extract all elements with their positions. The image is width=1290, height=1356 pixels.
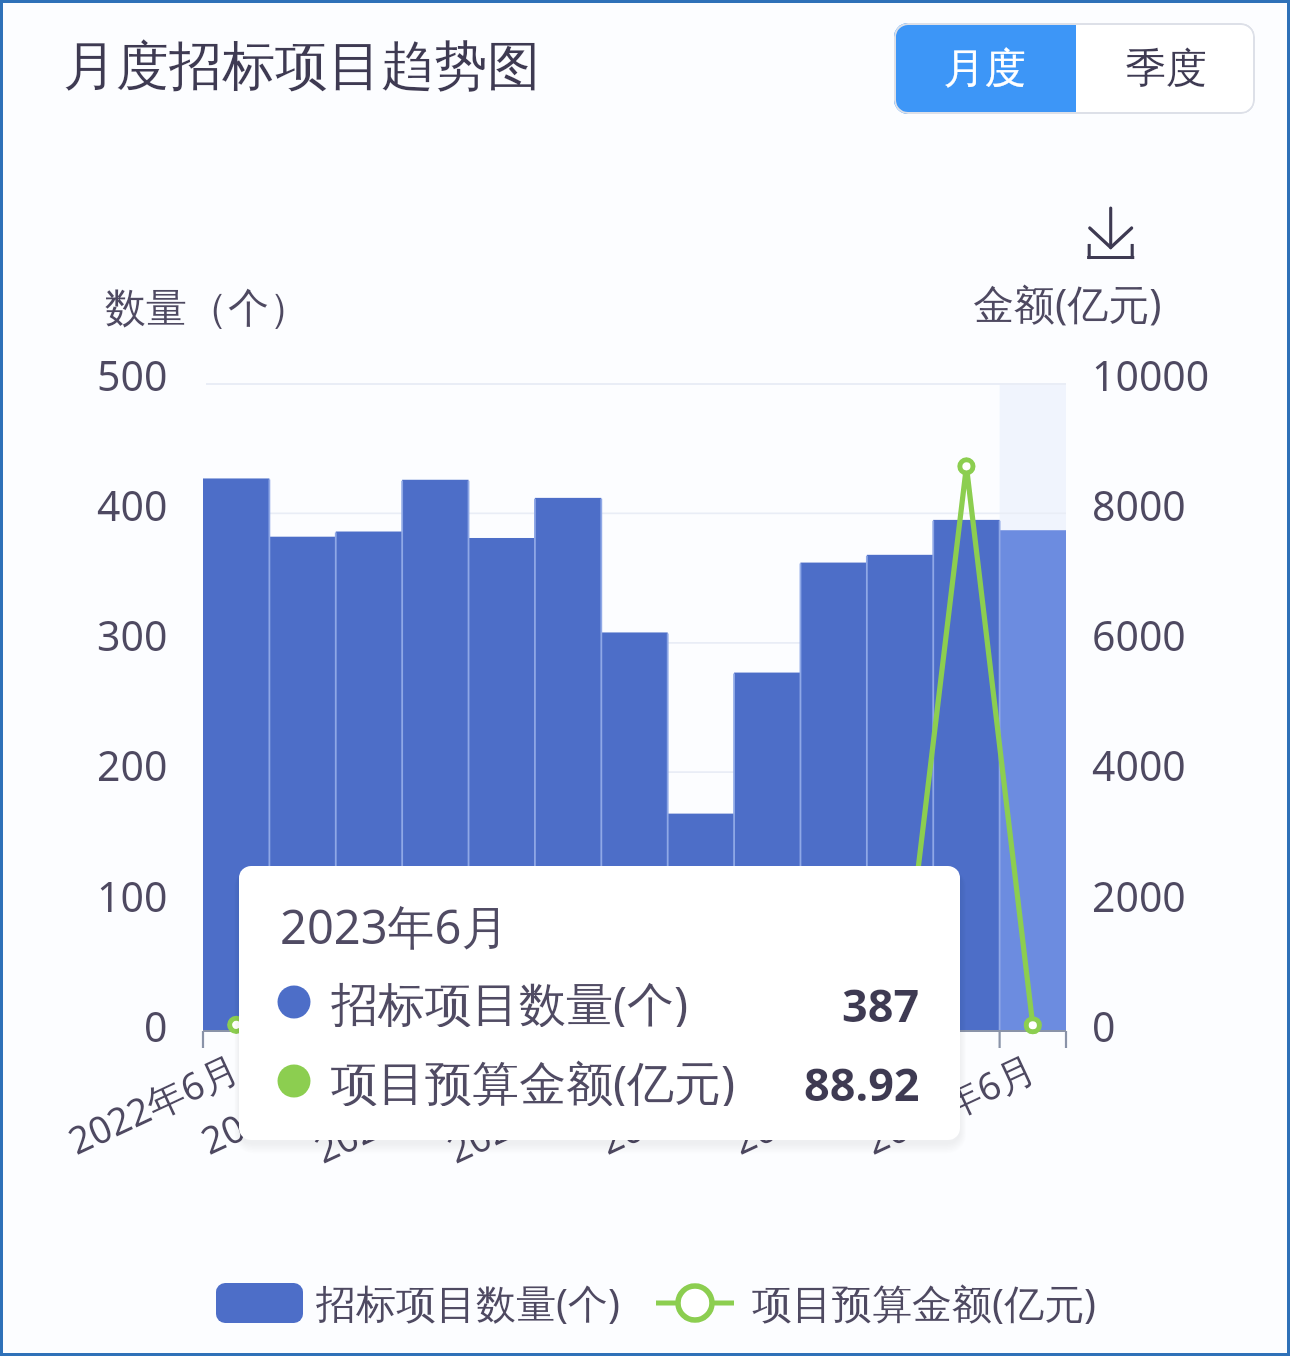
staticText: 项目预算金额(亿元) xyxy=(331,1050,736,1106)
staticText: 387 xyxy=(842,974,920,1030)
staticText: 100 xyxy=(97,868,168,924)
staticText: 2000 xyxy=(1092,868,1186,924)
staticText: 0 xyxy=(1092,998,1116,1054)
button[interactable]: 月度 xyxy=(894,23,1076,114)
button[interactable]: 季度 xyxy=(1076,23,1255,114)
staticText: 500 xyxy=(97,347,168,403)
staticText: 招标项目数量(个) xyxy=(331,971,689,1027)
button[interactable]: 招标项目数量(个) xyxy=(216,1275,620,1330)
staticText: 4000 xyxy=(1092,737,1186,793)
staticText: 300 xyxy=(97,607,168,663)
staticText: 月度 xyxy=(944,43,1026,95)
staticText: 400 xyxy=(97,477,168,533)
button[interactable]: 项目预算金额(亿元) xyxy=(656,1275,1096,1330)
staticText: 200 xyxy=(97,737,168,793)
staticText: 招标项目数量(个) xyxy=(316,1275,620,1330)
staticText: 6000 xyxy=(1092,607,1186,663)
staticText: 数量（个） xyxy=(105,283,310,335)
staticText: 8000 xyxy=(1092,477,1186,533)
staticText: 季度 xyxy=(1125,43,1207,95)
staticText: 88.92 xyxy=(804,1053,920,1109)
staticText: 2023年6月 xyxy=(280,894,509,950)
button[interactable]: Download xyxy=(1082,200,1142,260)
staticText: 金额(亿元) xyxy=(973,275,1162,331)
staticText: 月度招标项目趋势图 xyxy=(63,33,540,100)
staticText: 项目预算金额(亿元) xyxy=(752,1275,1096,1330)
staticText: 10000 xyxy=(1092,347,1210,403)
staticText: 0 xyxy=(144,998,168,1054)
